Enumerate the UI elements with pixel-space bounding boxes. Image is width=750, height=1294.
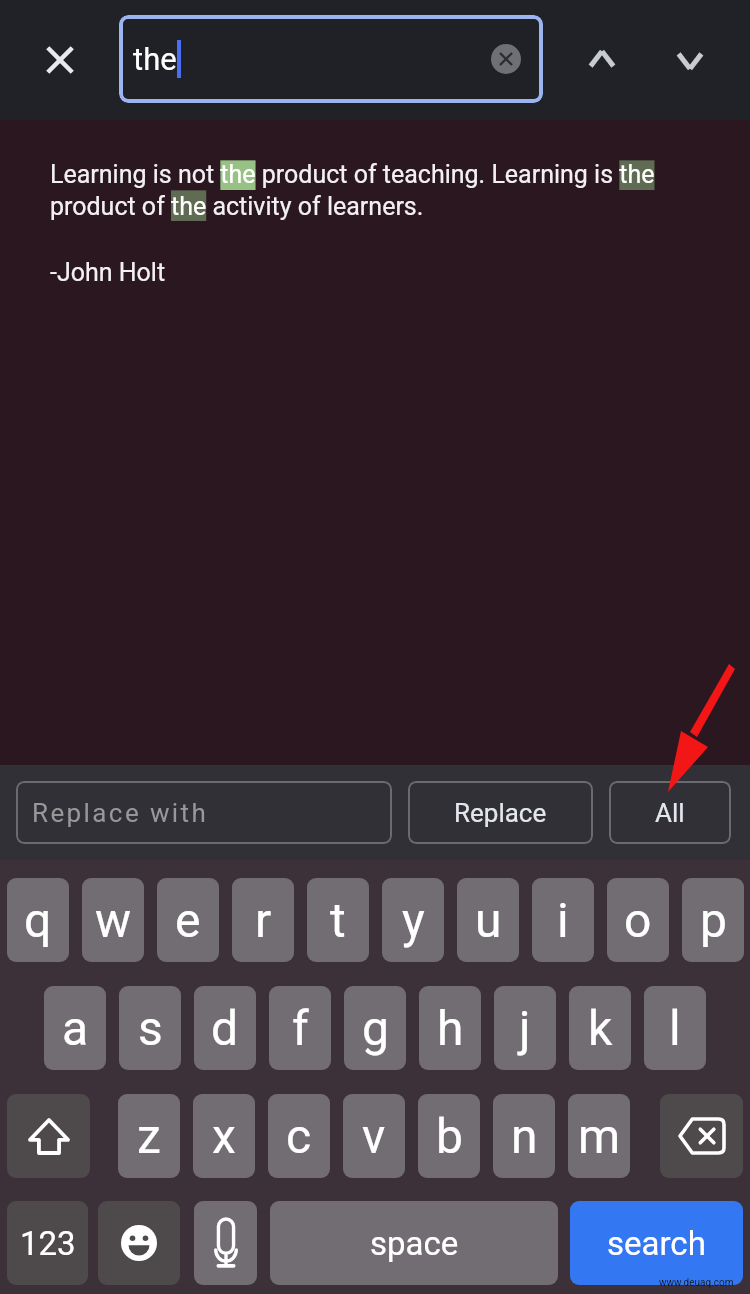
staticText: r xyxy=(255,892,272,948)
staticText: a xyxy=(62,1000,89,1056)
staticText: b xyxy=(436,1108,463,1164)
staticText: g xyxy=(362,1000,389,1056)
staticText: All xyxy=(655,798,685,828)
staticText: o xyxy=(624,892,652,948)
button[interactable]: c xyxy=(268,1094,330,1178)
button[interactable]: Voice input xyxy=(194,1201,257,1285)
button[interactable]: Replace with xyxy=(16,781,392,844)
button[interactable]: 123 xyxy=(7,1201,88,1285)
staticText: d xyxy=(211,1000,239,1056)
button[interactable]: Shift xyxy=(7,1094,90,1178)
button[interactable]: v xyxy=(343,1094,405,1178)
button[interactable]: a xyxy=(44,986,106,1070)
staticText: Replace xyxy=(454,798,547,828)
staticText: s xyxy=(138,1000,163,1056)
button[interactable]: Clear xyxy=(482,35,530,83)
staticText: Learning is not the product of teaching.… xyxy=(50,160,700,221)
staticText: c xyxy=(286,1108,312,1164)
staticText: n xyxy=(511,1108,538,1164)
button[interactable]: p xyxy=(682,878,744,962)
staticText: i xyxy=(557,892,569,948)
staticText: u xyxy=(475,892,502,948)
button[interactable]: e xyxy=(157,878,219,962)
button[interactable]: Replace xyxy=(408,781,593,844)
button[interactable]: m xyxy=(568,1094,630,1178)
button[interactable]: x xyxy=(193,1094,255,1178)
staticText: m xyxy=(578,1108,621,1164)
staticText: f xyxy=(292,1000,309,1056)
button[interactable]: r xyxy=(232,878,294,962)
staticText: t xyxy=(330,892,346,948)
staticText: the xyxy=(133,41,177,77)
staticText: q xyxy=(24,892,52,948)
staticText: Replace with xyxy=(32,798,209,828)
button[interactable]: search xyxy=(570,1201,743,1285)
button[interactable]: Previous match xyxy=(562,20,642,100)
button[interactable]: u xyxy=(457,878,519,962)
button[interactable]: h xyxy=(419,986,481,1070)
button[interactable]: f xyxy=(269,986,331,1070)
button[interactable]: g xyxy=(344,986,406,1070)
staticText: y xyxy=(402,892,425,948)
staticText: v xyxy=(362,1108,386,1164)
button[interactable]: d xyxy=(194,986,256,1070)
button[interactable]: l xyxy=(644,986,706,1070)
button[interactable]: Emoji xyxy=(98,1201,180,1285)
staticText: w xyxy=(95,892,132,948)
button[interactable]: Next match xyxy=(650,20,730,100)
staticText: -John Holt xyxy=(50,258,166,287)
button[interactable]: space xyxy=(270,1201,558,1285)
staticText: l xyxy=(669,1000,681,1056)
button[interactable]: b xyxy=(418,1094,480,1178)
button[interactable]: t xyxy=(307,878,369,962)
button[interactable]: Close xyxy=(20,20,100,100)
button[interactable]: z xyxy=(118,1094,180,1178)
button[interactable]: j xyxy=(494,986,556,1070)
staticText: www.deuaq.com xyxy=(659,1277,734,1289)
button[interactable]: s xyxy=(119,986,181,1070)
staticText: 123 xyxy=(20,1224,76,1263)
button[interactable]: q xyxy=(7,878,69,962)
button[interactable]: i xyxy=(532,878,594,962)
button[interactable]: the xyxy=(119,15,543,103)
button[interactable]: n xyxy=(493,1094,555,1178)
staticText: j xyxy=(519,1000,531,1056)
staticText: z xyxy=(137,1108,161,1164)
staticText: e xyxy=(175,892,201,948)
button[interactable]: w xyxy=(82,878,144,962)
button[interactable]: All xyxy=(609,781,731,844)
staticText: x xyxy=(212,1108,236,1164)
staticText: p xyxy=(700,892,727,948)
staticText: space xyxy=(370,1224,459,1263)
button[interactable]: o xyxy=(607,878,669,962)
staticText: search xyxy=(607,1224,706,1263)
staticText: h xyxy=(437,1000,464,1056)
button[interactable]: Backspace xyxy=(660,1094,743,1178)
button[interactable]: k xyxy=(569,986,631,1070)
staticText: k xyxy=(588,1000,613,1056)
button[interactable]: y xyxy=(382,878,444,962)
